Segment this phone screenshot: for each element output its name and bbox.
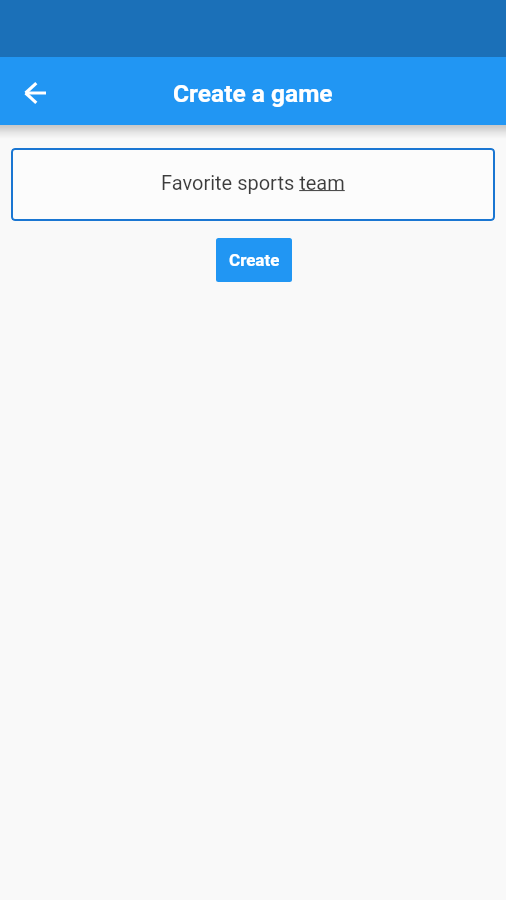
staticText: Create a game [173, 79, 333, 108]
button[interactable]: Create [216, 238, 292, 282]
button[interactable]: Navigate back [13, 71, 57, 115]
staticText: Favorite sports team [161, 171, 345, 194]
button[interactable]: Favorite sports team [11, 148, 495, 221]
staticText: Create [229, 250, 280, 270]
